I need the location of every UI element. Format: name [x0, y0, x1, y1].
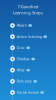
staticText: Vocab review	[17, 90, 39, 95]
button[interactable]: Role play	[10, 76, 56, 87]
staticText: Learning Steps	[13, 10, 43, 16]
button[interactable]: Shadow	[10, 53, 56, 65]
button[interactable]: Watch	[10, 20, 56, 31]
button[interactable]: Vocab review	[10, 87, 56, 98]
staticText: Write	[17, 68, 25, 72]
button[interactable]: Write	[10, 65, 56, 76]
staticText: Role play	[17, 79, 32, 83]
staticText: 7 Gamified	[17, 4, 38, 9]
staticText: Active listening	[17, 34, 42, 39]
button[interactable]: Quiz	[10, 42, 56, 53]
staticText: Watch	[17, 23, 27, 28]
staticText: Shadow	[17, 57, 30, 61]
staticText: Quiz	[17, 46, 25, 50]
button[interactable]: Active listening	[10, 31, 56, 42]
